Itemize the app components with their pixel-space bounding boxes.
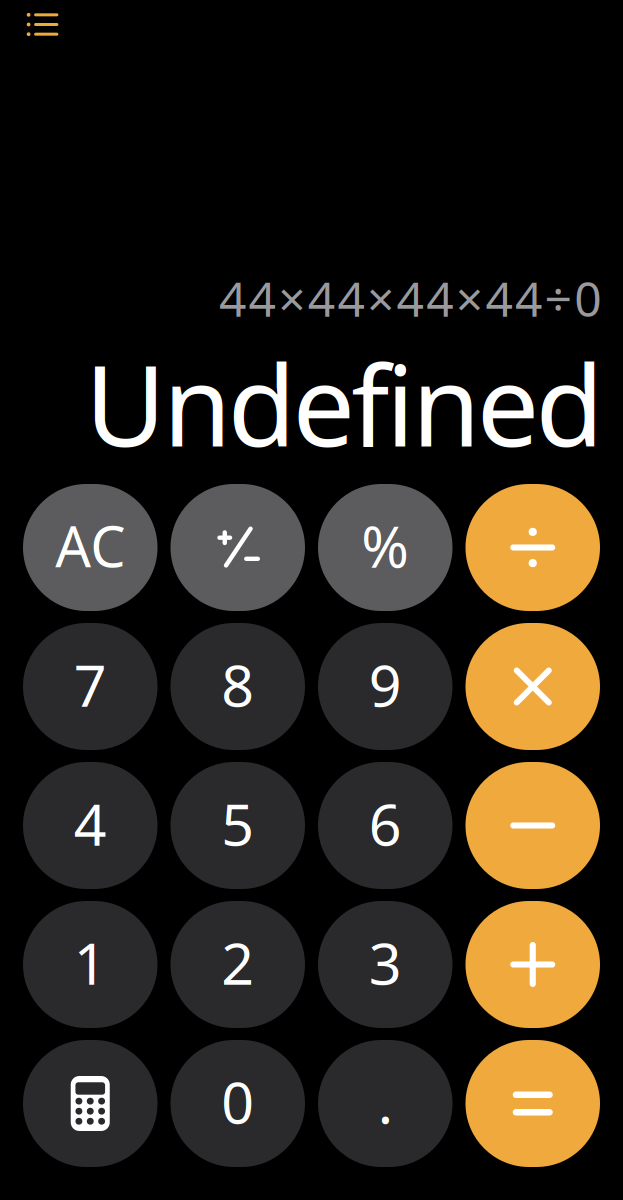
- button[interactable]: Divide: [465, 484, 600, 611]
- button[interactable]: 2: [170, 901, 305, 1028]
- staticText: 2: [221, 924, 254, 1000]
- button[interactable]: 1: [23, 901, 157, 1028]
- staticText: 0: [221, 1063, 254, 1139]
- button[interactable]: Minus: [465, 762, 600, 889]
- staticText: %: [361, 507, 409, 583]
- staticText: 7: [74, 646, 107, 722]
- button[interactable]: Multiply: [465, 623, 600, 750]
- button[interactable]: 7: [23, 623, 157, 750]
- staticText: AC: [55, 508, 125, 583]
- button[interactable]: Equals: [465, 1040, 600, 1167]
- button[interactable]: AC: [23, 484, 157, 611]
- button[interactable]: Calculator keypad: [23, 1040, 157, 1167]
- button[interactable]: .: [318, 1040, 452, 1167]
- button[interactable]: Plus minus: [170, 484, 305, 611]
- staticText: 9: [369, 646, 402, 722]
- button[interactable]: %: [318, 484, 452, 611]
- staticText: Undefined: [85, 330, 603, 477]
- button[interactable]: 9: [318, 623, 452, 750]
- staticText: 44×44×44×44÷0: [219, 266, 601, 330]
- button[interactable]: 4: [23, 762, 157, 889]
- staticText: 1: [74, 924, 107, 1000]
- staticText: 5: [221, 785, 254, 861]
- button[interactable]: History: [0, 0, 72, 47]
- staticText: 6: [369, 785, 402, 861]
- button[interactable]: 0: [170, 1040, 305, 1167]
- button[interactable]: Plus: [465, 901, 600, 1028]
- button[interactable]: 8: [170, 623, 305, 750]
- staticText: 4: [74, 785, 107, 861]
- button[interactable]: 5: [170, 762, 305, 889]
- staticText: 3: [369, 924, 402, 1000]
- staticText: .: [378, 1063, 393, 1139]
- button[interactable]: 3: [318, 901, 452, 1028]
- button[interactable]: 6: [318, 762, 452, 889]
- staticText: 8: [221, 646, 254, 722]
